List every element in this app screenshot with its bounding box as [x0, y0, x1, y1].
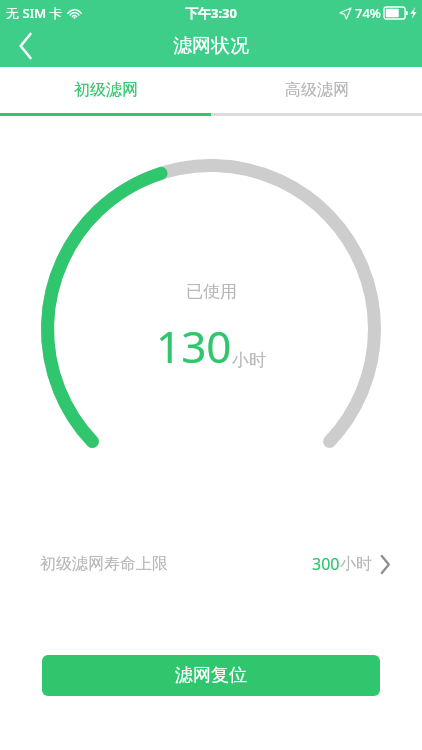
staticText: 130 [156, 316, 232, 376]
button[interactable]: 滤网复位 [42, 655, 380, 696]
staticText: 已使用 [186, 281, 237, 302]
staticText: 74% [355, 4, 381, 22]
staticText: 高级滤网 [285, 80, 349, 100]
staticText: 滤网复位 [175, 664, 247, 687]
button[interactable]: 初级滤网 [0, 67, 211, 113]
staticText: 无 SIM 卡 [6, 4, 63, 22]
staticText: 初级滤网寿命上限 [40, 554, 168, 574]
staticText: 小时 [232, 350, 266, 371]
staticText: 小时 [340, 554, 372, 574]
button[interactable]: Back [0, 25, 52, 67]
staticText: 下午3:30 [185, 4, 237, 22]
staticText: 滤网状况 [173, 34, 249, 58]
staticText: 300 [312, 553, 340, 575]
button[interactable]: 初级滤网寿命上限 [0, 541, 422, 587]
button[interactable]: 高级滤网 [211, 67, 422, 113]
staticText: 初级滤网 [74, 80, 138, 100]
